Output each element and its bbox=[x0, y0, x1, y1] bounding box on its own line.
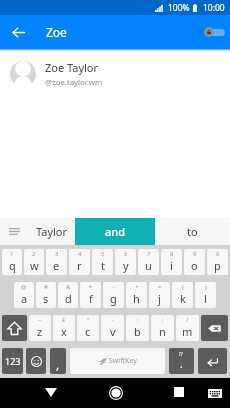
button[interactable]: / bbox=[176, 315, 199, 341]
button[interactable]: 7 bbox=[138, 249, 159, 275]
button[interactable]: 9 bbox=[184, 249, 205, 275]
staticText: = bbox=[158, 283, 162, 291]
button[interactable]: ) bbox=[195, 282, 216, 308]
staticText: ~ bbox=[38, 316, 42, 324]
button[interactable]: and bbox=[75, 218, 155, 245]
staticText: l bbox=[204, 291, 207, 306]
staticText: f bbox=[89, 291, 93, 306]
staticText: & bbox=[66, 283, 71, 291]
button[interactable]: @ bbox=[14, 282, 34, 308]
button[interactable]: 8 bbox=[161, 249, 182, 275]
staticText: 1 bbox=[10, 250, 14, 258]
button[interactable]: 3 bbox=[46, 249, 67, 275]
button[interactable]: ° bbox=[77, 315, 99, 341]
staticText: to bbox=[187, 224, 198, 239]
staticText: b bbox=[134, 324, 141, 339]
button[interactable]: Menu bbox=[0, 218, 29, 245]
staticText: 7 bbox=[147, 250, 151, 258]
staticText: : bbox=[137, 316, 139, 324]
button[interactable]: Taylor bbox=[29, 218, 75, 245]
staticText: Taylor bbox=[36, 224, 68, 239]
button[interactable]: # bbox=[36, 282, 56, 308]
button[interactable]: Enter bbox=[198, 348, 227, 374]
staticText: x bbox=[61, 324, 67, 339]
staticText: @ bbox=[21, 283, 27, 291]
staticText: 9 bbox=[193, 250, 197, 258]
staticText: n bbox=[159, 324, 166, 339]
button[interactable]: 5 bbox=[92, 249, 113, 275]
button[interactable]: ; bbox=[151, 315, 174, 341]
button[interactable]: Zoe Taylor bbox=[0, 53, 230, 95]
staticText: c bbox=[85, 324, 91, 339]
button[interactable]: Backspace bbox=[201, 315, 228, 341]
staticText: @zoe.taylor.wm bbox=[45, 77, 103, 88]
staticText: u bbox=[145, 258, 152, 273]
staticText: k bbox=[180, 291, 186, 306]
staticText: , bbox=[56, 356, 60, 372]
staticText: r bbox=[77, 258, 82, 273]
button[interactable]: ( bbox=[172, 282, 193, 308]
button[interactable]: to bbox=[155, 218, 230, 245]
staticText: w bbox=[30, 258, 39, 273]
button[interactable]: Punctuation bbox=[169, 348, 194, 374]
staticText: i bbox=[170, 258, 173, 273]
button[interactable]: Space bbox=[70, 348, 165, 374]
button[interactable]: 6 bbox=[115, 249, 136, 275]
staticText: - bbox=[113, 283, 115, 291]
staticText: 2 bbox=[32, 250, 36, 258]
button[interactable]: Switch keyboard bbox=[200, 378, 230, 408]
staticText: 10:00 bbox=[203, 2, 225, 14]
staticText: t bbox=[101, 258, 105, 273]
button[interactable]: & bbox=[58, 282, 78, 308]
staticText: ) bbox=[205, 283, 207, 291]
button[interactable]: - bbox=[103, 282, 124, 308]
button[interactable]: · bbox=[101, 315, 124, 341]
staticText: z bbox=[37, 324, 43, 339]
button[interactable]: + bbox=[126, 282, 147, 308]
staticText: Zoe Taylor bbox=[45, 60, 99, 75]
staticText: p bbox=[214, 258, 221, 273]
button[interactable]: Shift bbox=[2, 315, 27, 341]
staticText: y bbox=[123, 258, 129, 273]
staticText: ( bbox=[182, 283, 184, 291]
button[interactable]: Numbers bbox=[2, 348, 23, 374]
staticText: o bbox=[191, 258, 198, 273]
staticText: . bbox=[180, 357, 183, 371]
button[interactable]: £ bbox=[53, 315, 75, 341]
staticText: d bbox=[65, 291, 72, 306]
staticText: 0 bbox=[216, 250, 220, 258]
button[interactable]: Secret chat toggle bbox=[204, 25, 225, 39]
button[interactable]: 4 bbox=[69, 249, 90, 275]
button[interactable]: Back bbox=[5, 19, 31, 45]
staticText: h bbox=[133, 291, 140, 306]
staticText: s bbox=[43, 291, 49, 306]
staticText: + bbox=[135, 283, 139, 291]
button[interactable]: 1 bbox=[2, 249, 22, 275]
button[interactable]: 0 bbox=[207, 249, 228, 275]
button[interactable]: = bbox=[149, 282, 170, 308]
staticText: Zoe bbox=[46, 24, 67, 40]
staticText: 4 bbox=[78, 250, 82, 258]
staticText: 100% bbox=[168, 2, 190, 14]
staticText: !? bbox=[179, 350, 184, 358]
button[interactable]: * bbox=[80, 282, 101, 308]
button[interactable]: 2 bbox=[24, 249, 44, 275]
staticText: a bbox=[21, 291, 28, 306]
staticText: and bbox=[105, 224, 126, 239]
button[interactable]: Recents bbox=[164, 378, 194, 408]
button[interactable]: Comma bbox=[50, 348, 66, 374]
button[interactable]: ~ bbox=[29, 315, 51, 341]
staticText: 8 bbox=[170, 250, 174, 258]
button[interactable]: Emoji bbox=[26, 348, 46, 374]
button[interactable]: Back bbox=[36, 378, 66, 408]
staticText: / bbox=[186, 316, 189, 324]
button[interactable]: : bbox=[126, 315, 149, 341]
staticText: 3 bbox=[55, 250, 59, 258]
staticText: q bbox=[9, 258, 16, 273]
staticText: j bbox=[158, 291, 161, 306]
staticText: g bbox=[110, 291, 117, 306]
staticText: SwiftKey bbox=[109, 356, 137, 366]
staticText: ; bbox=[162, 316, 164, 324]
button[interactable]: Home bbox=[101, 378, 131, 408]
staticText: 5 bbox=[101, 250, 105, 258]
